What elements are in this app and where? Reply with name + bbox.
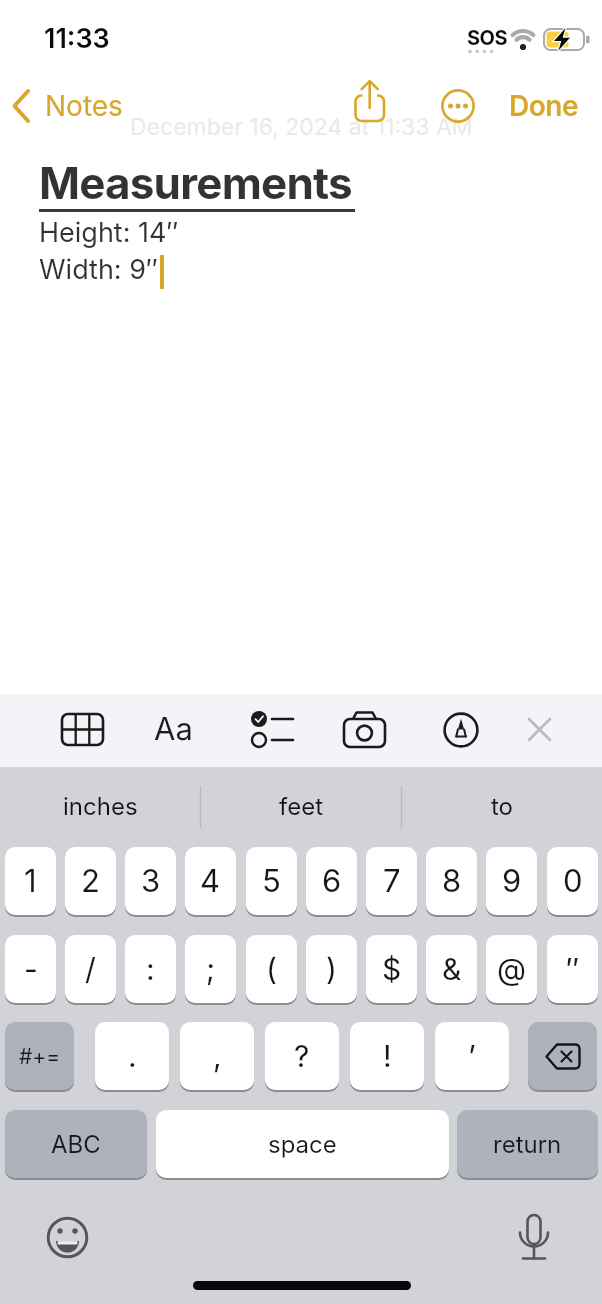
button[interactable]: $ — [366, 935, 417, 1003]
staticText: ’ — [468, 1038, 476, 1074]
staticText: ABC — [51, 1130, 101, 1159]
button[interactable] — [513, 1208, 555, 1264]
staticText: ! — [383, 1038, 392, 1074]
button[interactable]: Done — [505, 86, 585, 126]
staticText: ; — [206, 951, 216, 987]
button[interactable]: & — [426, 935, 477, 1003]
button[interactable]: 6 — [306, 847, 357, 915]
button[interactable]: 8 — [426, 847, 477, 915]
button[interactable]: 2 — [65, 847, 116, 915]
staticText: SOS — [467, 26, 508, 50]
staticText: 11:33 — [44, 22, 110, 55]
staticText: 2 — [81, 862, 100, 900]
button[interactable]: . — [95, 1022, 169, 1090]
button[interactable]: feet — [201, 772, 401, 840]
staticText: space — [268, 1130, 337, 1159]
staticText: . — [128, 1038, 137, 1074]
button[interactable]: ; — [185, 935, 236, 1003]
staticText: inches — [63, 792, 138, 821]
staticText: ? — [294, 1038, 310, 1074]
button[interactable]: Notes — [8, 84, 128, 128]
button[interactable]: 5 — [246, 847, 297, 915]
staticText: & — [442, 951, 462, 987]
staticText: 6 — [322, 862, 342, 900]
staticText: Done — [509, 89, 578, 123]
button[interactable]: , — [180, 1022, 254, 1090]
button[interactable]: space — [156, 1110, 449, 1178]
button[interactable] — [246, 706, 298, 752]
staticText: Width: 9″ — [39, 253, 158, 286]
staticText: / — [85, 951, 96, 987]
button[interactable]: 7 — [366, 847, 417, 915]
staticText: #+= — [19, 1044, 61, 1069]
staticText: December 16, 2024 at 11:33 AM — [130, 113, 473, 141]
staticText: 3 — [141, 862, 161, 900]
button[interactable] — [524, 714, 556, 746]
button[interactable]: ″ — [547, 935, 598, 1003]
button[interactable]: to — [402, 772, 602, 840]
button[interactable]: 3 — [125, 847, 176, 915]
button[interactable]: return — [457, 1110, 598, 1178]
button[interactable]: ’ — [435, 1022, 509, 1090]
staticText: ) — [326, 951, 337, 987]
staticText: - — [24, 951, 38, 987]
button[interactable]: 4 — [185, 847, 236, 915]
staticText: feet — [279, 792, 324, 821]
staticText: 4 — [200, 862, 221, 900]
button[interactable]: @ — [486, 935, 537, 1003]
button[interactable]: inches — [0, 772, 200, 840]
staticText: Aa — [154, 710, 193, 748]
button[interactable] — [528, 1022, 597, 1090]
button[interactable]: Aa — [150, 706, 202, 752]
button[interactable]: 9 — [486, 847, 537, 915]
staticText: 1 — [24, 862, 37, 900]
button[interactable]: 1 — [5, 847, 56, 915]
button[interactable] — [58, 710, 106, 750]
staticText: 5 — [262, 862, 281, 900]
staticText: 8 — [442, 862, 462, 900]
button[interactable] — [46, 1216, 90, 1260]
button[interactable]: : — [125, 935, 176, 1003]
button[interactable]: #+= — [5, 1022, 74, 1090]
button[interactable] — [440, 88, 476, 124]
button[interactable]: ABC — [5, 1110, 147, 1178]
staticText: to — [491, 792, 514, 821]
staticText: Measurements — [39, 156, 352, 209]
staticText: 7 — [383, 862, 401, 900]
button[interactable]: ( — [246, 935, 297, 1003]
staticText: return — [493, 1130, 562, 1159]
button[interactable] — [440, 709, 482, 751]
staticText: $ — [382, 951, 402, 987]
staticText: , — [213, 1038, 222, 1074]
button[interactable]: - — [5, 935, 56, 1003]
staticText: Notes — [45, 89, 123, 123]
staticText: 9 — [502, 862, 522, 900]
button[interactable] — [340, 706, 390, 752]
staticText: ″ — [566, 951, 580, 987]
button[interactable] — [348, 76, 392, 128]
button[interactable]: 0 — [547, 847, 598, 915]
staticText: 0 — [563, 862, 583, 900]
button[interactable]: ? — [265, 1022, 339, 1090]
staticText: : — [146, 951, 155, 987]
staticText: Height: 14″ — [39, 216, 179, 249]
button[interactable]: ) — [306, 935, 357, 1003]
staticText: ( — [266, 951, 277, 987]
button[interactable]: / — [65, 935, 116, 1003]
button[interactable]: ! — [350, 1022, 424, 1090]
staticText: @ — [497, 951, 526, 987]
